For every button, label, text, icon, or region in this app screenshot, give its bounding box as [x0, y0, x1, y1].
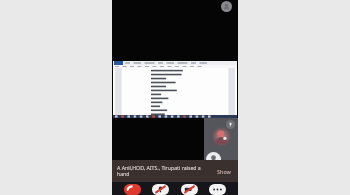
button[interactable]: Start video	[181, 184, 198, 195]
button[interactable]: More options	[209, 184, 226, 195]
button[interactable]: Show	[215, 167, 233, 176]
button[interactable]: Self view	[221, 1, 232, 12]
button[interactable]: Unmute microphone	[152, 184, 169, 195]
staticText: Show	[217, 168, 231, 175]
button[interactable]: Shared screen	[112, 61, 238, 118]
button[interactable]: A Anil,HOD, AITS., Tirupati raised a han…	[112, 160, 238, 182]
button[interactable]: End call	[124, 184, 141, 195]
staticText: A Anil,HOD, AITS., Tirupati raised a han…	[117, 164, 212, 178]
button[interactable]: Participants	[204, 118, 238, 160]
